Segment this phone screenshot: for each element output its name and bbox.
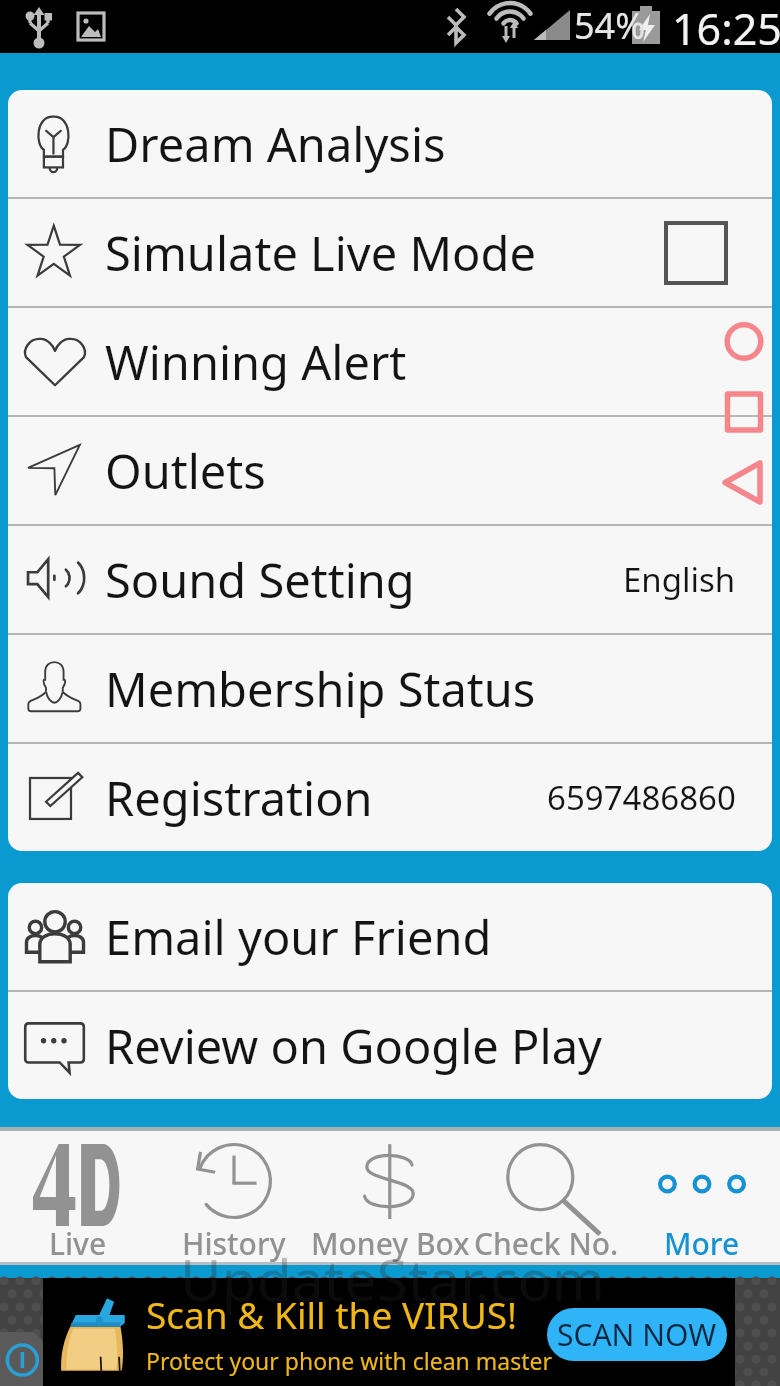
button[interactable] — [156, 1131, 312, 1262]
button[interactable] — [468, 1131, 624, 1262]
staticText: SCAN NOW — [557, 1314, 717, 1355]
staticText: Scan & Kill the VIRUS! — [146, 1289, 517, 1339]
button[interactable]: SCAN NOW — [547, 1308, 727, 1361]
button[interactable]: Sound Setting — [8, 526, 772, 633]
staticText: 6597486860 — [547, 775, 736, 820]
staticText: Sound Setting — [105, 548, 415, 612]
staticText: Winning Alert — [105, 330, 407, 394]
staticText: 54% — [574, 1, 646, 50]
button[interactable]: Outlets — [8, 417, 772, 524]
staticText: Live — [49, 1223, 107, 1264]
button[interactable]: Email your Friend — [8, 883, 772, 990]
button[interactable]: Membership Status — [8, 635, 772, 742]
staticText: Dream Analysis — [105, 112, 446, 176]
staticText: Review on Google Play — [105, 1014, 602, 1078]
staticText: 16:25 — [672, 0, 780, 52]
button[interactable]: Registration — [8, 744, 772, 851]
staticText: UpdateStar.com — [180, 1240, 606, 1318]
staticText: Check No. — [474, 1223, 619, 1264]
button[interactable]: Dream Analysis — [8, 90, 772, 197]
button[interactable] — [0, 1131, 156, 1262]
button[interactable] — [312, 1131, 468, 1262]
staticText: Simulate Live Mode — [105, 221, 536, 285]
button[interactable] — [624, 1131, 780, 1262]
staticText: More — [664, 1223, 740, 1264]
button[interactable]: Simulate Live Mode — [8, 199, 772, 306]
staticText: History — [182, 1223, 286, 1264]
button[interactable]: Ad info — [0, 1332, 43, 1386]
button[interactable]: Review on Google Play — [8, 992, 772, 1099]
staticText: Email your Friend — [105, 905, 492, 969]
staticText: Protect your phone with clean master — [146, 1345, 552, 1376]
staticText: Outlets — [105, 439, 266, 503]
staticText: Membership Status — [105, 657, 536, 721]
staticText: Money Box — [311, 1223, 470, 1264]
staticText: English — [623, 557, 736, 602]
button[interactable]: Winning Alert — [8, 308, 772, 415]
staticText: Registration — [105, 766, 373, 830]
